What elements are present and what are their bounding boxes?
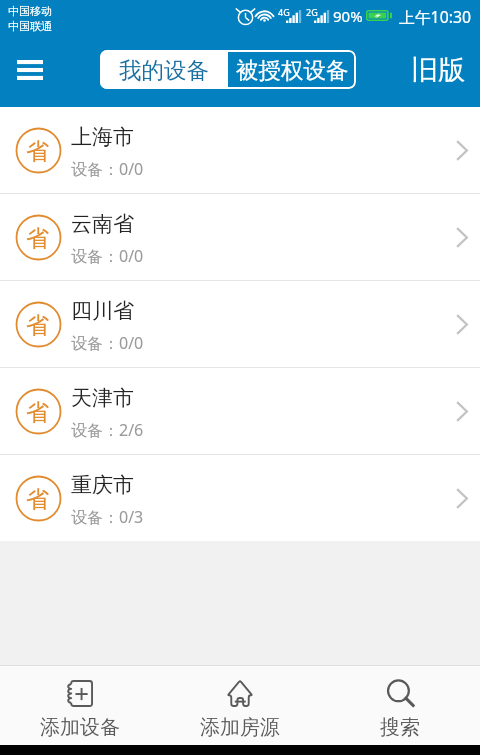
button[interactable]: 被授权设备 (228, 50, 356, 89)
staticText: 重庆市 (71, 472, 134, 498)
button[interactable]: 省 (0, 368, 480, 454)
button[interactable]: 旧版 (403, 47, 473, 93)
staticText: 省 (26, 311, 49, 340)
staticText: 中国联通 (8, 19, 52, 33)
staticText: 省 (26, 398, 49, 427)
staticText: 搜索 (380, 715, 420, 740)
button[interactable]: 省 (0, 281, 480, 367)
button[interactable]: 我的设备 (100, 50, 228, 89)
button[interactable]: 添加房源 (160, 666, 320, 745)
staticText: 90% (333, 6, 363, 26)
button[interactable]: 菜单 (7, 47, 53, 93)
staticText: 省 (26, 224, 49, 253)
staticText: 设备：0/0 (71, 158, 144, 180)
staticText: 4G (278, 6, 290, 18)
staticText: 云南省 (71, 211, 134, 237)
staticText: 被授权设备 (236, 56, 349, 84)
button[interactable]: 省 (0, 455, 480, 541)
staticText: 旧版 (411, 53, 465, 87)
staticText: 中国移动 (8, 4, 52, 18)
staticText: 设备：0/0 (71, 245, 144, 267)
staticText: 添加设备 (40, 715, 120, 740)
staticText: 设备：0/0 (71, 332, 144, 354)
staticText: 上海市 (71, 124, 134, 150)
staticText: 省 (26, 485, 49, 514)
staticText: 四川省 (71, 298, 134, 324)
button[interactable]: 省 (0, 107, 480, 193)
staticText: 添加房源 (200, 715, 280, 740)
button[interactable]: 省 (0, 194, 480, 280)
staticText: 我的设备 (119, 56, 209, 84)
staticText: 省 (26, 137, 49, 166)
staticText: 设备：2/6 (71, 419, 144, 441)
button[interactable]: 添加设备 (0, 666, 160, 745)
staticText: 2G (306, 6, 318, 18)
staticText: 设备：0/3 (71, 506, 144, 528)
button[interactable]: 搜索 (320, 666, 480, 745)
staticText: 上午10:30 (399, 6, 471, 28)
staticText: 天津市 (71, 385, 134, 411)
